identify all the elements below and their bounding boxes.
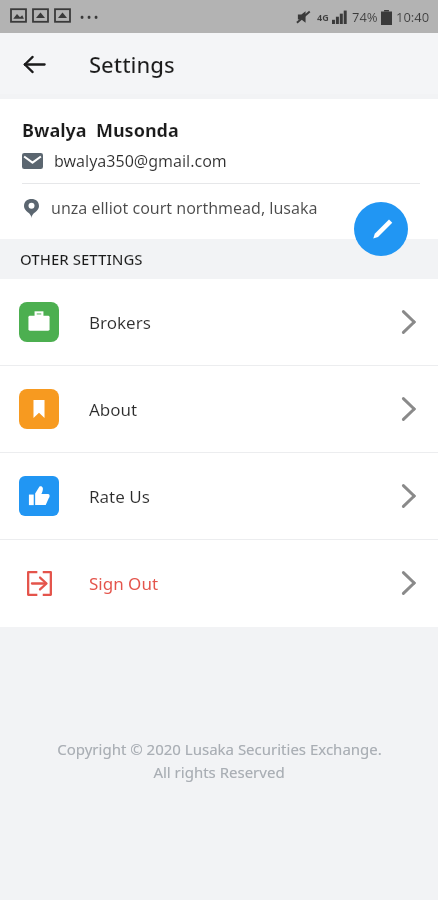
button[interactable]: Edit profile: [354, 202, 408, 256]
button[interactable]: Back: [10, 40, 58, 88]
staticText: Sign Out: [89, 572, 159, 595]
staticText: Bwalya Musonda: [22, 118, 179, 143]
staticText: Copyright © 2020 Lusaka Securities Excha…: [57, 739, 382, 759]
staticText: bwalya350@gmail.com: [54, 150, 227, 172]
staticText: Settings: [89, 49, 175, 79]
staticText: unza elliot court northmead, lusaka: [51, 197, 318, 219]
staticText: Brokers: [89, 311, 151, 334]
staticText: OTHER SETTINGS: [20, 249, 143, 269]
staticText: • • •: [80, 9, 99, 24]
button[interactable]: Sign Out: [0, 540, 438, 626]
staticText: 4G: [317, 11, 329, 23]
staticText: 74%: [352, 8, 378, 26]
staticText: 10:40: [396, 8, 430, 26]
button[interactable]: Brokers: [0, 279, 438, 365]
staticText: About: [89, 398, 138, 421]
staticText: Rate Us: [89, 485, 150, 508]
staticText: All rights Reserved: [153, 762, 285, 782]
button[interactable]: About: [0, 366, 438, 452]
button[interactable]: Rate Us: [0, 453, 438, 539]
